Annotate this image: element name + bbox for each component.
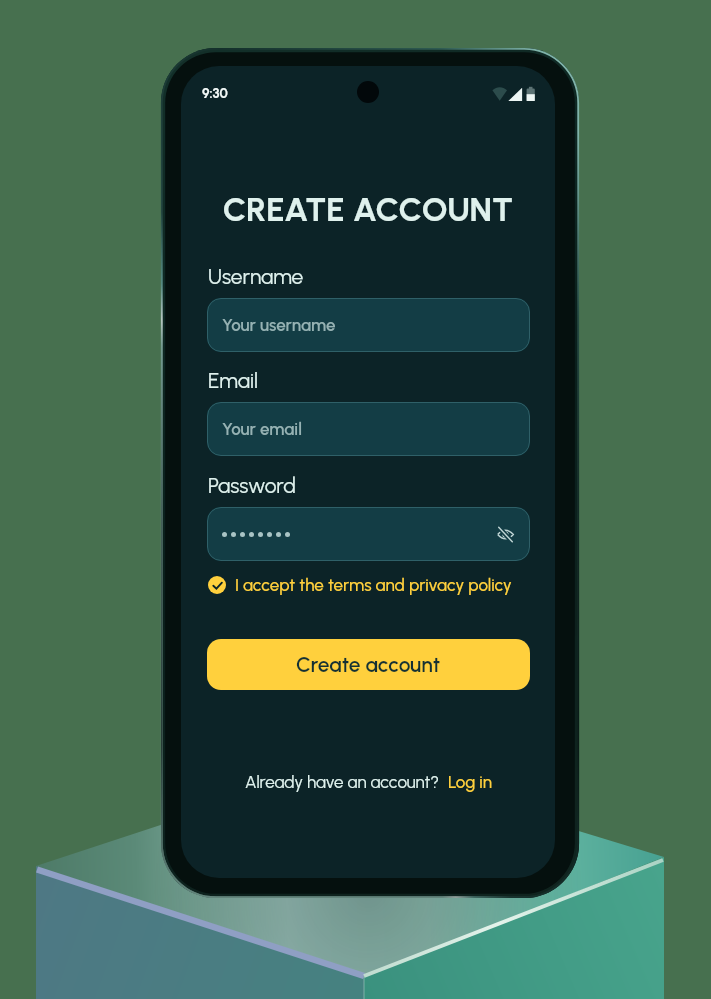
button[interactable]: Your email [207, 402, 530, 456]
staticText: Log in [448, 772, 492, 792]
staticText: Already have an account? [245, 772, 440, 792]
staticText: Create account [296, 652, 441, 677]
button[interactable]: Your username [207, 298, 530, 352]
staticText: CREATE ACCOUNT [181, 189, 555, 229]
staticText: Your email [222, 419, 302, 439]
staticText: Email [208, 368, 258, 393]
staticText: Password [208, 473, 296, 498]
staticText: Your username [222, 315, 336, 335]
staticText: 9:30 [202, 85, 228, 101]
button[interactable]: I accept the terms and privacy policy [208, 575, 512, 595]
button[interactable]: Create account [207, 639, 530, 690]
button[interactable]: Show password [494, 523, 517, 546]
staticText: Username [208, 264, 304, 289]
button[interactable]: Log in [448, 772, 492, 792]
button[interactable]: Show password [207, 507, 530, 561]
staticText: I accept the terms and privacy policy [235, 575, 512, 595]
